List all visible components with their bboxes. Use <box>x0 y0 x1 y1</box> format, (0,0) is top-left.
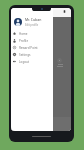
button[interactable]: Reward Point <box>11 44 53 51</box>
staticText: Profile <box>19 39 29 43</box>
staticText: Logout <box>19 60 29 64</box>
staticText: Settings <box>19 53 31 57</box>
button[interactable]: Mr. Cuban <box>11 14 53 30</box>
button[interactable]: Home <box>11 30 53 37</box>
button[interactable]: Profile <box>11 37 53 44</box>
staticText: Edit profile <box>25 23 39 27</box>
staticText: Home <box>19 32 28 36</box>
staticText: Reward Point <box>19 46 38 50</box>
button[interactable]: Logout <box>11 58 53 65</box>
staticText: Mr. Cuban <box>25 17 42 22</box>
button[interactable]: Settings <box>11 51 53 58</box>
